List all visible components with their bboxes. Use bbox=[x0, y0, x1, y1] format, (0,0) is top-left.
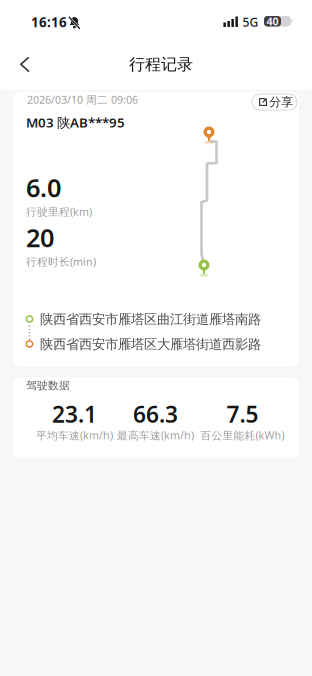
staticText: 分享 bbox=[269, 95, 293, 109]
staticText: 最高车速(km/h) bbox=[117, 428, 194, 442]
staticText: 16:16 bbox=[31, 13, 67, 31]
staticText: 行驶里程(km) bbox=[26, 204, 92, 219]
staticText: 40 bbox=[266, 14, 278, 28]
staticText: 百公里能耗(kWh) bbox=[200, 428, 284, 442]
button[interactable]: 分享 bbox=[252, 94, 297, 110]
staticText: 陕西省西安市雁塔区曲江街道雁塔南路 bbox=[40, 311, 261, 327]
staticText: 7.5 bbox=[226, 399, 258, 429]
button[interactable]: Back bbox=[8, 52, 44, 78]
staticText: 66.3 bbox=[133, 399, 178, 429]
staticText: 5G bbox=[242, 14, 258, 30]
staticText: 平均车速(km/h) bbox=[36, 428, 113, 442]
staticText: 20 bbox=[26, 220, 54, 254]
staticText: 陕西省西安市雁塔区大雁塔街道西影路 bbox=[40, 336, 261, 352]
staticText: 行程时长(min) bbox=[26, 254, 96, 269]
staticText: 23.1 bbox=[52, 399, 97, 429]
staticText: M03 陕AB***95 bbox=[26, 113, 125, 131]
staticText: 行程记录 bbox=[129, 54, 193, 74]
staticText: 驾驶数据 bbox=[26, 379, 70, 392]
staticText: 6.0 bbox=[26, 170, 61, 204]
staticText: 2026/03/10 周二 09:06 bbox=[27, 92, 138, 107]
